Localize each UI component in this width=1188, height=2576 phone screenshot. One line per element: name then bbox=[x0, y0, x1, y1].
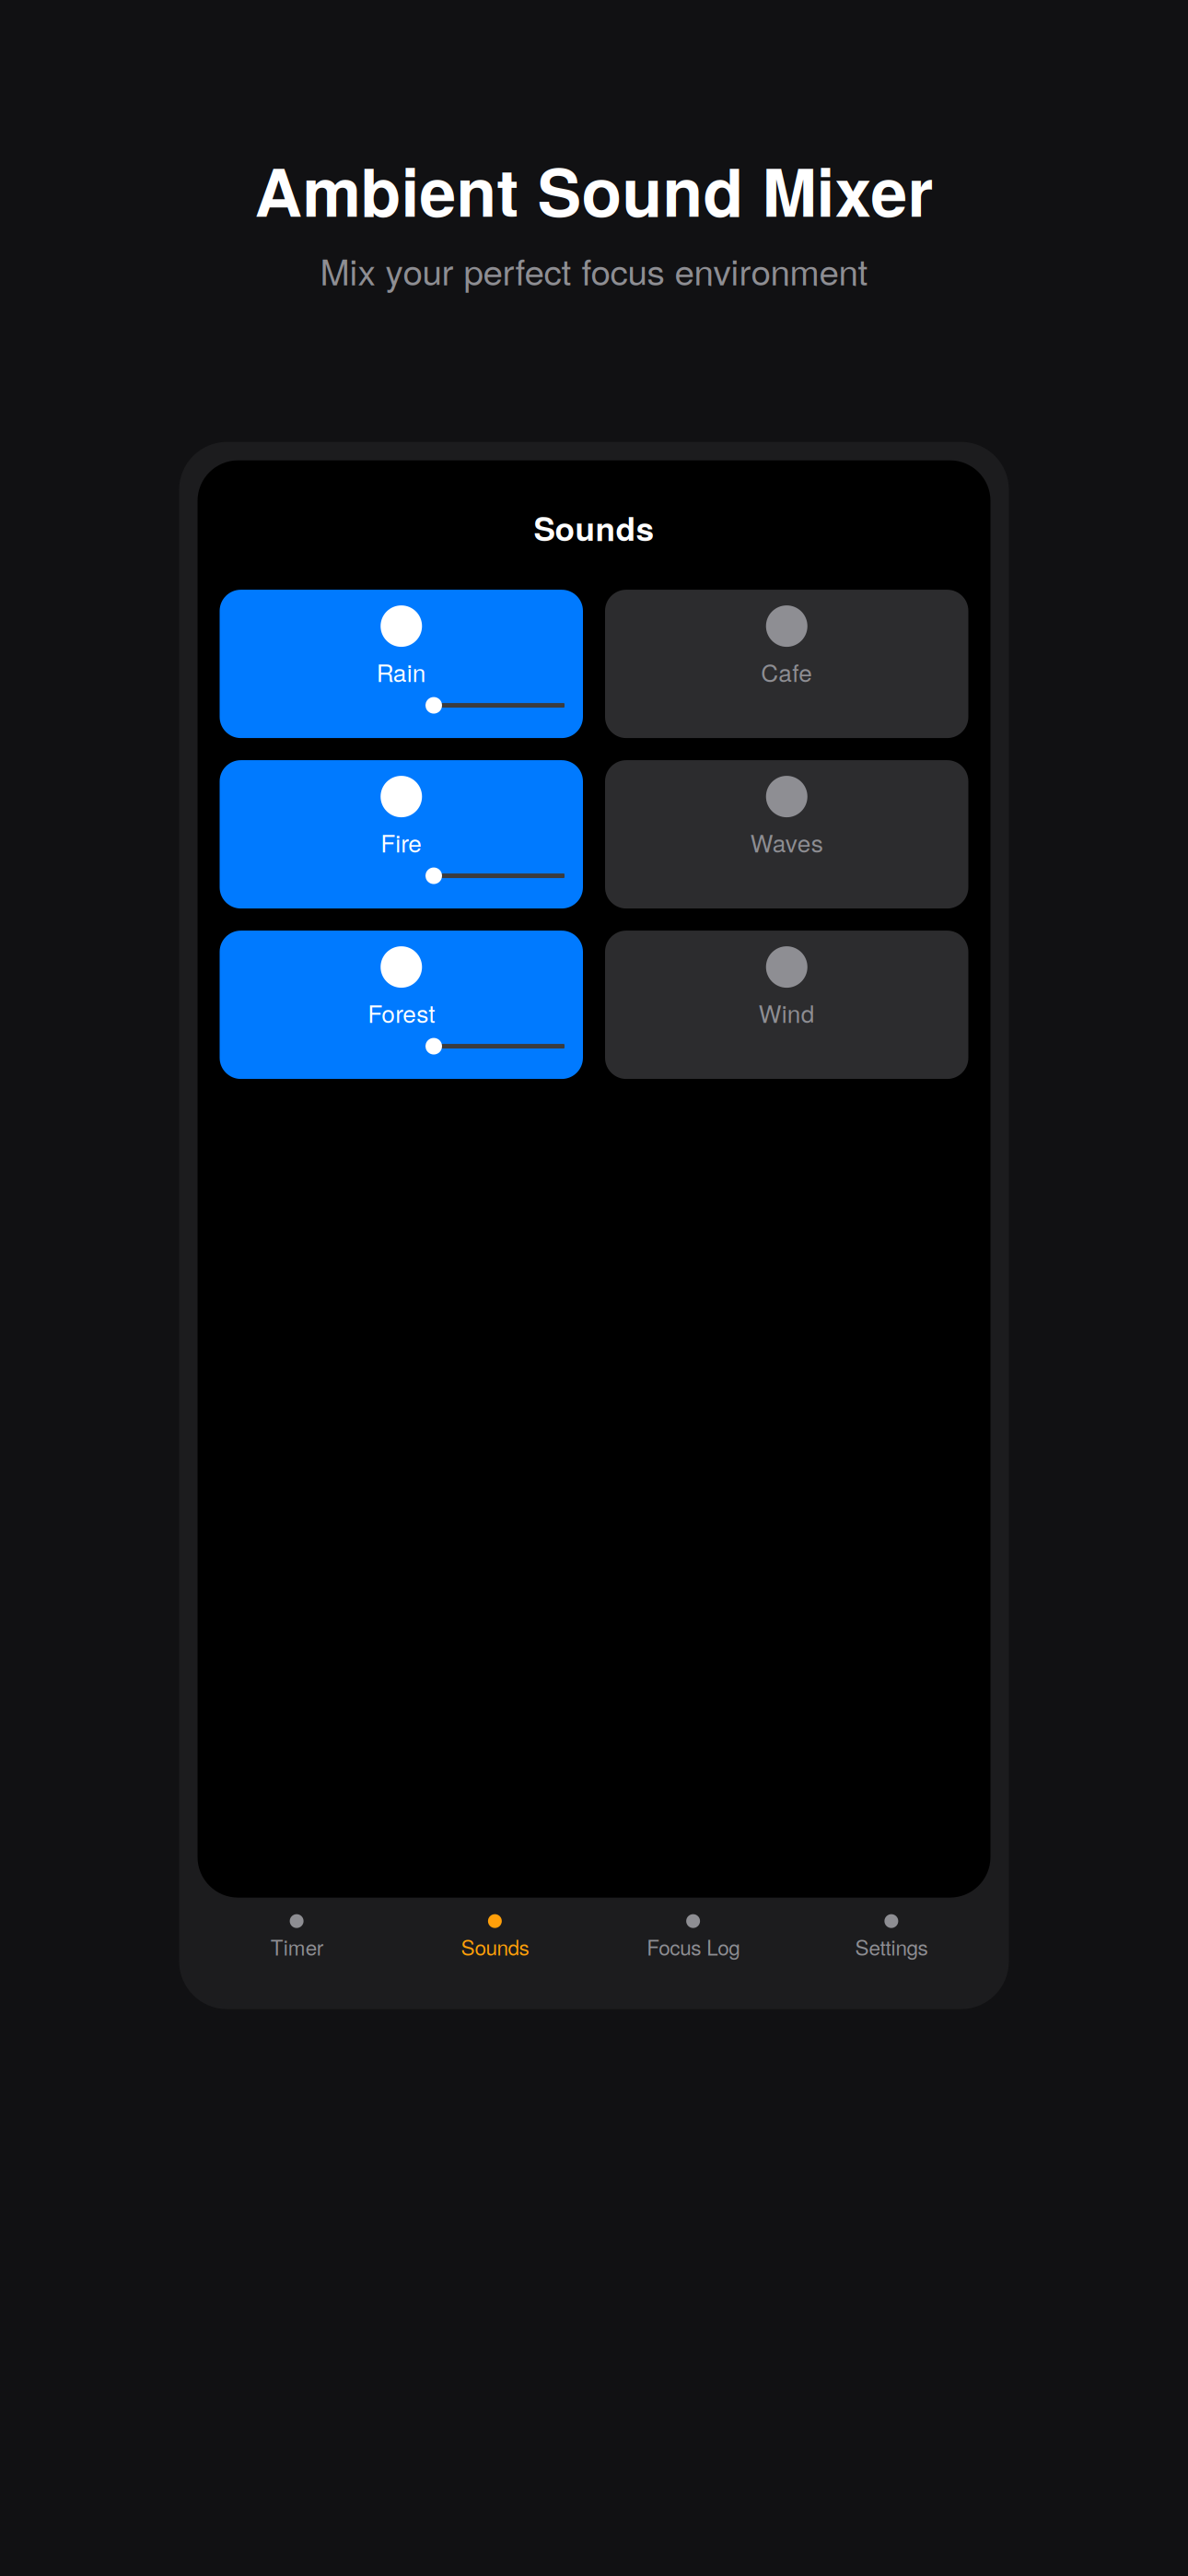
staticText: Forest bbox=[368, 995, 435, 1030]
staticText: Waves bbox=[750, 825, 823, 859]
staticText: Sounds bbox=[534, 505, 654, 551]
staticText: Settings bbox=[855, 1932, 928, 1961]
button[interactable]: Focus Log bbox=[594, 1898, 792, 2009]
button[interactable]: Fire bbox=[220, 760, 583, 909]
button[interactable]: Timer bbox=[198, 1898, 396, 2009]
staticText: Fire bbox=[381, 825, 422, 859]
staticText: Mix your perfect focus environment bbox=[320, 244, 868, 295]
button[interactable]: Wind bbox=[605, 931, 968, 1079]
button[interactable]: Cafe bbox=[605, 590, 968, 738]
staticText: Sounds bbox=[461, 1932, 529, 1961]
button[interactable]: Sounds bbox=[396, 1898, 594, 2009]
button[interactable]: Settings bbox=[792, 1898, 990, 2009]
staticText: Cafe bbox=[761, 654, 812, 689]
staticText: Rain bbox=[376, 654, 426, 689]
staticText: Focus Log bbox=[647, 1932, 740, 1961]
staticText: Wind bbox=[759, 995, 815, 1030]
button[interactable]: Rain bbox=[220, 590, 583, 738]
button[interactable]: Forest bbox=[220, 931, 583, 1079]
button[interactable]: Waves bbox=[605, 760, 968, 909]
staticText: Ambient Sound Mixer bbox=[255, 143, 933, 237]
staticText: Timer bbox=[270, 1932, 323, 1961]
